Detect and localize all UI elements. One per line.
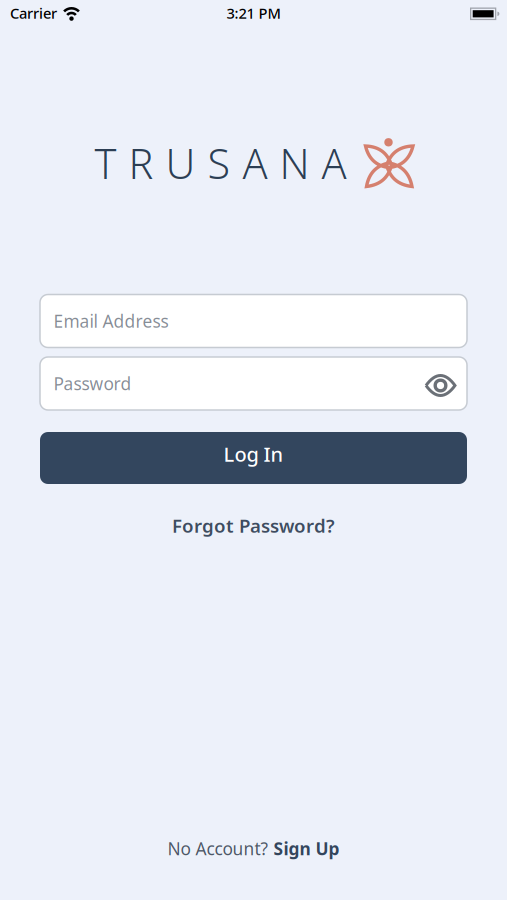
- staticText: Sign Up: [273, 837, 339, 860]
- staticText: Carrier: [10, 3, 57, 23]
- staticText: 3:21 PM: [226, 3, 280, 23]
- staticText: Forgot Password?: [172, 513, 335, 538]
- button[interactable]: [425, 372, 455, 395]
- staticText: Password: [53, 372, 131, 395]
- button[interactable]: Sign Up: [273, 837, 339, 860]
- button[interactable]: Email Address: [40, 294, 467, 347]
- button[interactable]: Password: [40, 357, 467, 410]
- button[interactable]: Forgot Password?: [172, 513, 335, 538]
- staticText: No Account?: [167, 837, 268, 860]
- button[interactable]: Log In: [40, 432, 467, 484]
- staticText: Log In: [223, 441, 283, 467]
- staticText: TRUSANA: [94, 136, 346, 190]
- staticText: Email Address: [53, 309, 168, 332]
